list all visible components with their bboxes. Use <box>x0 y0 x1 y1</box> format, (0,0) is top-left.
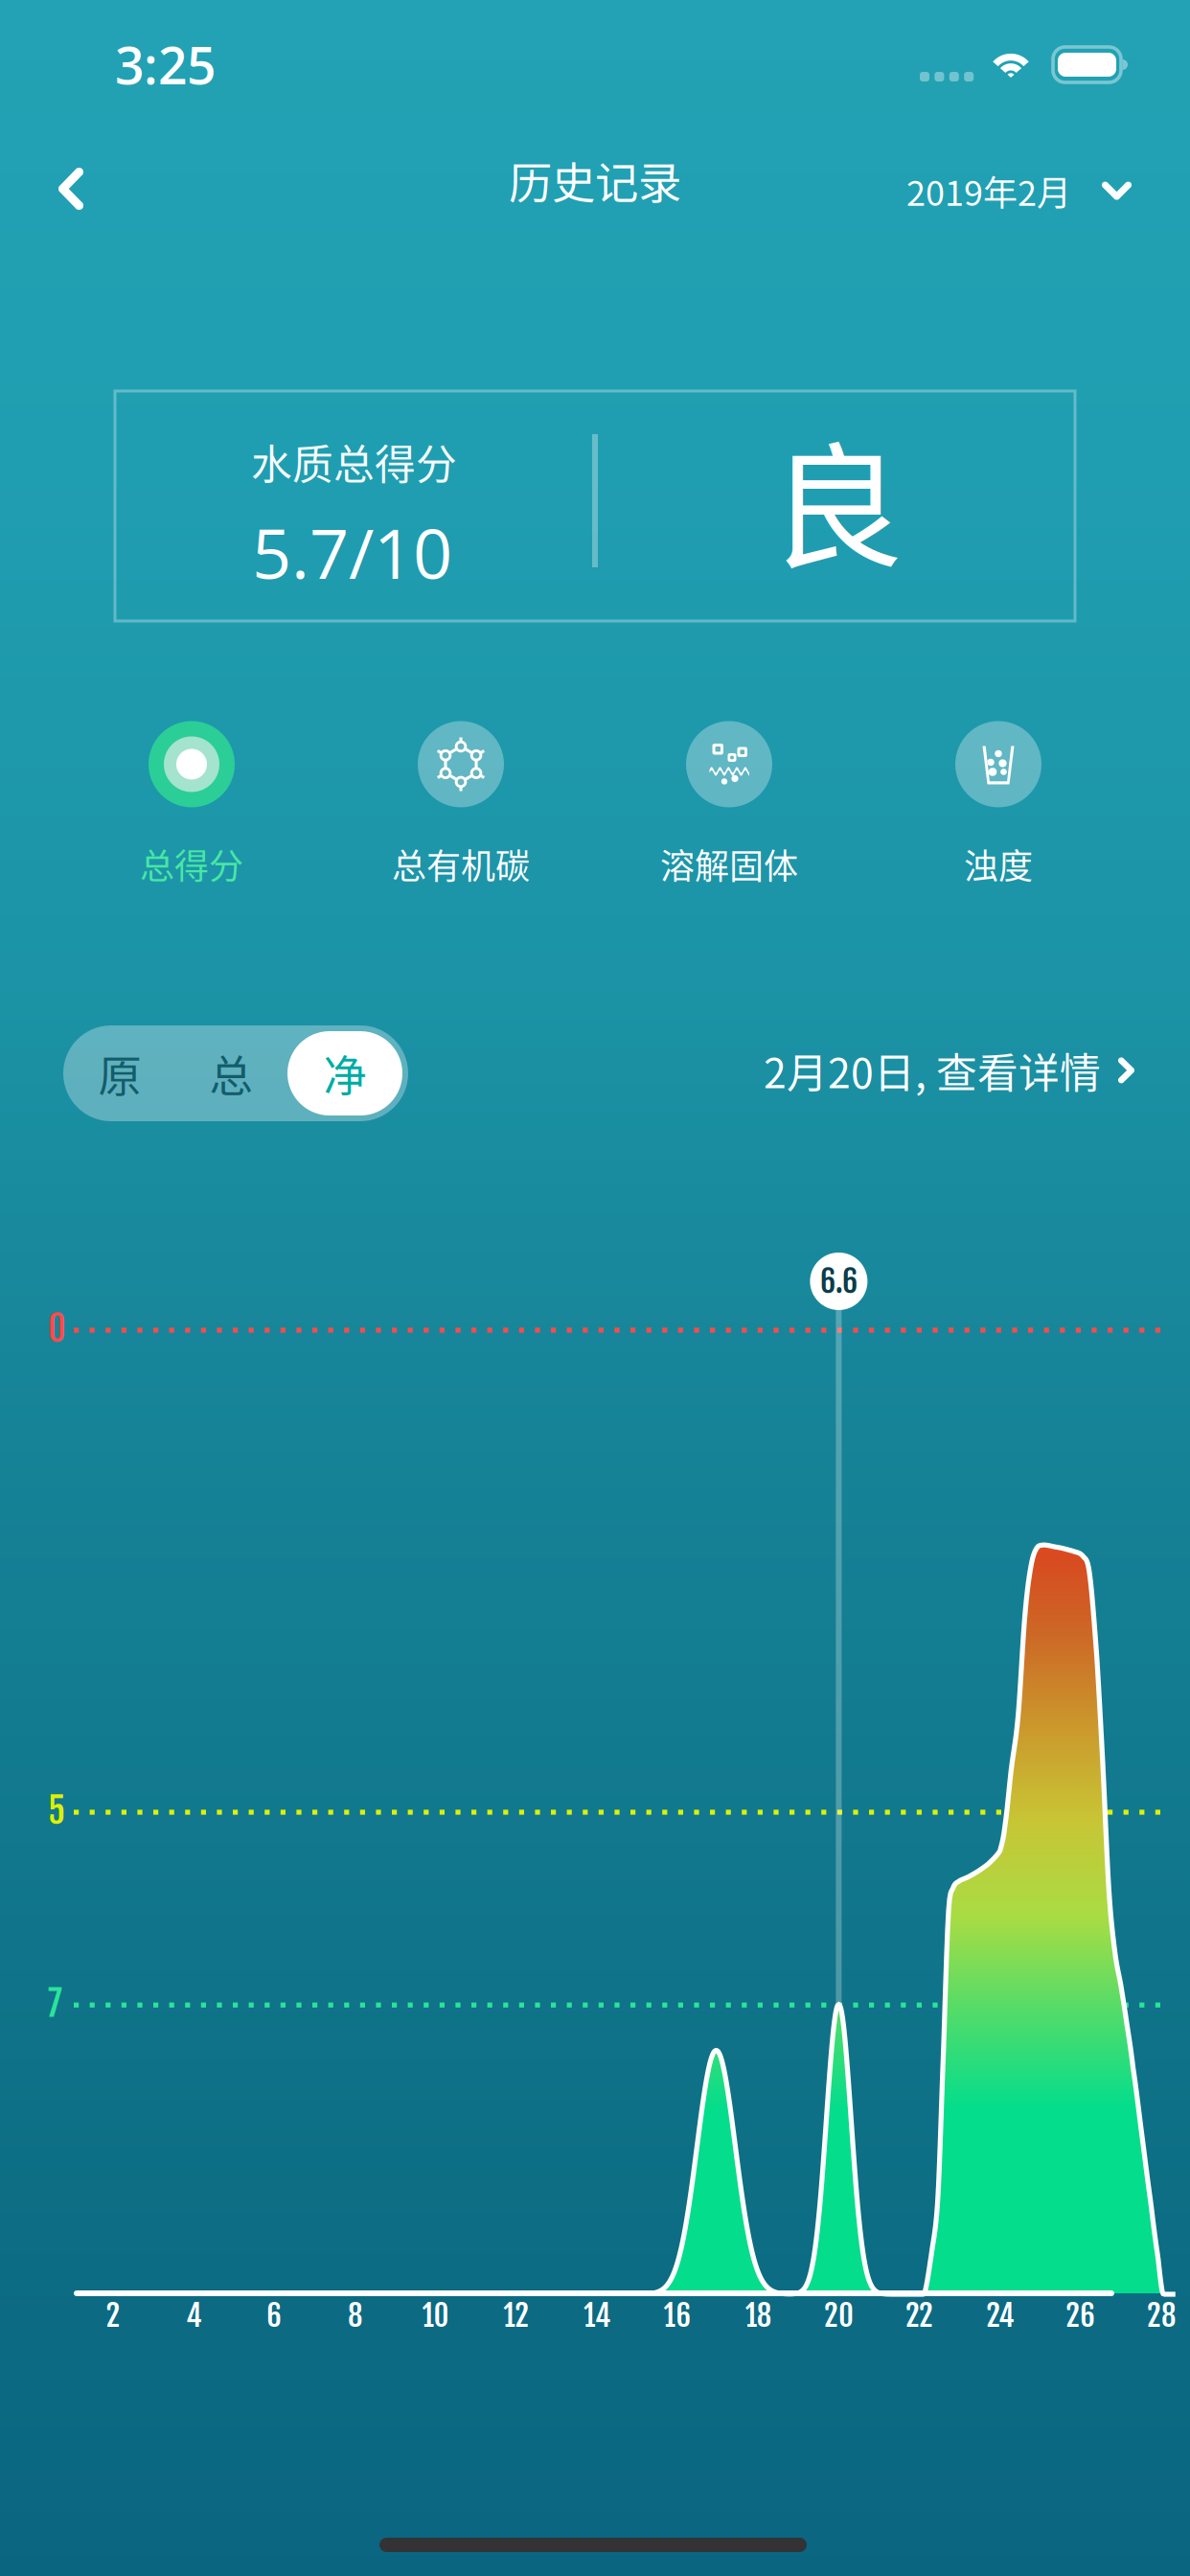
staticText: 8 <box>348 2297 362 2334</box>
button[interactable]: 2月20日, 查看详情 <box>750 1020 1148 1121</box>
button[interactable]: 净 <box>287 1025 402 1121</box>
staticText: 浊度 <box>964 839 1033 889</box>
staticText: 10 <box>422 2297 449 2334</box>
staticText: 28 <box>1147 2297 1176 2334</box>
staticText: 22 <box>905 2297 933 2334</box>
staticText: 0 <box>48 1307 66 1350</box>
button[interactable]: 2019年2月 <box>891 137 1147 244</box>
staticText: 2 <box>106 2297 120 2334</box>
button[interactable]: 总得分 <box>67 709 316 901</box>
button[interactable]: 原 <box>63 1025 176 1121</box>
staticText: 总有机碳 <box>392 839 530 889</box>
staticText: 7 <box>48 1982 62 2025</box>
button[interactable]: Back <box>19 137 123 241</box>
staticText: 2019年2月 <box>906 166 1071 216</box>
staticText: 溶解固体 <box>660 839 798 889</box>
staticText: 6 <box>267 2297 282 2334</box>
button[interactable]: 溶解固体 <box>605 709 854 901</box>
staticText: 6.6 <box>820 1262 857 1301</box>
staticText: 24 <box>986 2297 1014 2334</box>
staticText: 原 <box>98 1042 141 1105</box>
staticText: 14 <box>583 2297 610 2334</box>
staticText: 净 <box>323 1042 366 1105</box>
staticText: 5 <box>48 1789 65 1833</box>
staticText: 总得分 <box>140 839 243 889</box>
staticText: 水质总得分 <box>251 432 457 491</box>
staticText: 总 <box>209 1042 252 1105</box>
button[interactable]: 浊度 <box>874 709 1123 901</box>
staticText: 历史记录 <box>509 149 681 212</box>
button[interactable]: 总 <box>174 1025 287 1121</box>
staticText: 2月20日, 查看详情 <box>764 1041 1101 1100</box>
staticText: 16 <box>664 2297 691 2334</box>
staticText: 5.7/10 <box>252 505 452 599</box>
staticText: 26 <box>1066 2297 1095 2334</box>
staticText: 20 <box>824 2297 854 2334</box>
button[interactable]: 总有机碳 <box>336 709 585 901</box>
staticText: 良 <box>768 400 904 596</box>
staticText: 3:25 <box>115 30 216 99</box>
staticText: 18 <box>745 2297 771 2334</box>
staticText: 4 <box>186 2297 201 2334</box>
staticText: 12 <box>503 2297 529 2334</box>
